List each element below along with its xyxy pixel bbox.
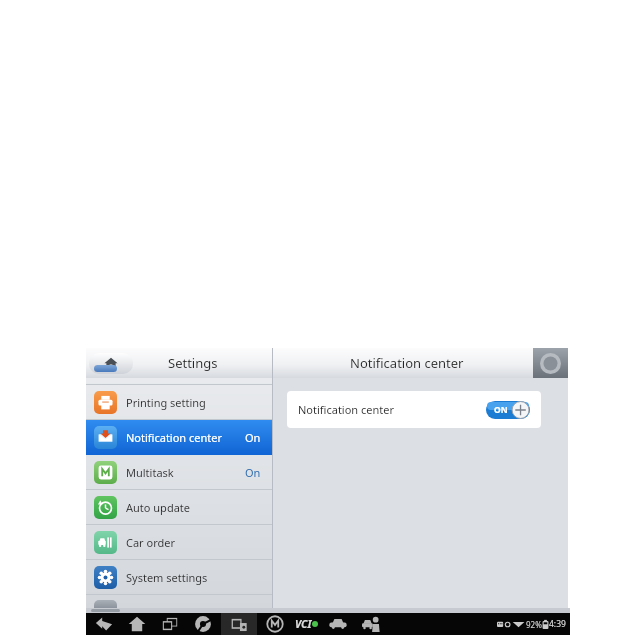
button[interactable]: System settings xyxy=(86,560,272,595)
staticText: System settings xyxy=(126,570,208,585)
staticText: Notification center xyxy=(350,354,464,372)
button[interactable]: Home xyxy=(89,353,133,374)
button[interactable]: Browser xyxy=(194,615,212,633)
staticText: Auto update xyxy=(126,500,190,515)
button[interactable]: Auto update xyxy=(86,490,272,525)
button[interactable]: Home xyxy=(128,615,146,633)
button[interactable]: Notification center xyxy=(287,391,541,428)
staticText: Notification center xyxy=(126,430,223,445)
button[interactable]: VCI connected xyxy=(295,617,318,631)
staticText: Multitask xyxy=(126,465,174,480)
button[interactable]: Notification center toggle, on xyxy=(486,401,530,419)
staticText: VCI xyxy=(295,617,312,631)
staticText: On xyxy=(245,430,261,445)
button[interactable]: Back xyxy=(95,615,113,633)
staticText: Notification center xyxy=(298,402,395,417)
staticText: Car order xyxy=(126,535,176,550)
button[interactable]: Notification center xyxy=(86,420,272,455)
button[interactable]: Autel xyxy=(266,615,284,633)
staticText: Printing setting xyxy=(126,395,206,410)
button[interactable]: Screenshot xyxy=(221,613,257,635)
staticText: Settings xyxy=(168,354,218,372)
staticText: 92% xyxy=(526,619,542,630)
staticText: 4:39 xyxy=(549,618,566,630)
button[interactable]: Vehicle xyxy=(329,615,347,633)
staticText: On xyxy=(245,465,261,480)
button[interactable]: Menu xyxy=(533,348,568,378)
button[interactable]: Multitask xyxy=(86,455,272,490)
button[interactable]: Printing setting xyxy=(86,385,272,420)
button[interactable]: Car order xyxy=(86,525,272,560)
button[interactable]: Support xyxy=(362,615,380,633)
button[interactable]: Recent apps xyxy=(161,615,179,633)
staticText: ON xyxy=(494,404,508,416)
